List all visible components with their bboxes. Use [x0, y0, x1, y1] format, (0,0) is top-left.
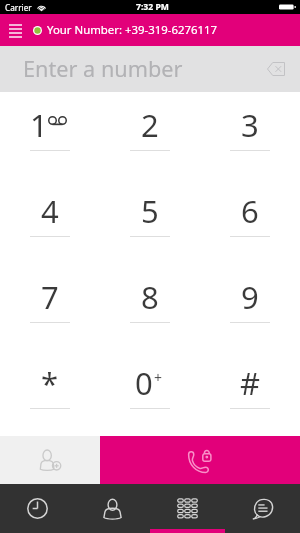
staticText: Carrier: [5, 2, 32, 13]
button[interactable]: Menu: [0, 14, 31, 46]
button[interactable]: 8: [100, 264, 200, 350]
staticText: 5: [141, 190, 159, 232]
button[interactable]: 9: [200, 264, 300, 350]
button[interactable]: Add contact: [0, 436, 100, 484]
staticText: 7:32 PM: [136, 1, 169, 13]
staticText: 4: [41, 190, 59, 232]
button[interactable]: Secure call: [100, 436, 300, 484]
staticText: 1: [30, 104, 48, 146]
staticText: Enter a number: [23, 54, 183, 84]
button[interactable]: 6: [200, 178, 300, 264]
button[interactable]: Backspace: [252, 46, 300, 92]
staticText: 2: [141, 104, 159, 146]
button[interactable]: 7: [0, 264, 100, 350]
button[interactable]: 4: [0, 178, 100, 264]
staticText: +: [154, 368, 163, 387]
staticText: 3: [241, 104, 259, 146]
staticText: 6: [241, 190, 259, 232]
button[interactable]: 0: [100, 350, 200, 436]
staticText: 8: [141, 276, 159, 318]
staticText: 0: [135, 362, 153, 404]
button[interactable]: 5: [100, 178, 200, 264]
staticText: 9: [241, 276, 259, 318]
button[interactable]: 2: [100, 92, 200, 178]
button[interactable]: Messages: [225, 484, 300, 533]
staticText: Your Number: +39-319-6276117: [47, 22, 218, 38]
button[interactable]: 3: [200, 92, 300, 178]
button[interactable]: Contacts: [75, 484, 150, 533]
staticText: 7: [41, 276, 59, 318]
button[interactable]: Recents: [0, 484, 75, 533]
button[interactable]: 1: [0, 92, 100, 178]
button[interactable]: *: [0, 350, 100, 436]
button[interactable]: Keypad: [150, 484, 225, 533]
staticText: *: [41, 362, 59, 404]
staticText: #: [240, 362, 261, 404]
button[interactable]: #: [200, 350, 300, 436]
